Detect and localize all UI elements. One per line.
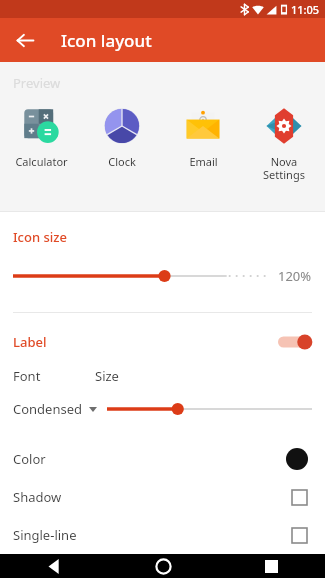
staticText: Shadow [13,488,62,506]
button[interactable]: Color [0,440,325,478]
staticText: 11:05 [291,2,320,17]
button[interactable]: Icon size slider [13,262,272,290]
staticText: Label [13,333,47,351]
button[interactable]: Label toggle [274,330,314,354]
staticText: Calculator [15,154,68,169]
button[interactable]: Back [0,554,109,578]
staticText: Icon size [13,228,67,246]
button[interactable]: Back [8,23,42,57]
staticText: Font [13,367,95,385]
button[interactable]: Recent apps [217,554,325,578]
staticText: Single-line [13,526,77,544]
button[interactable]: Calculator [5,104,77,169]
button[interactable]: Label size slider [107,396,312,422]
button[interactable]: Home [109,554,217,578]
staticText: Preview [13,74,61,92]
button[interactable]: Clock [86,104,158,169]
button[interactable]: Nova Settings [248,104,320,182]
staticText: 120% [278,267,312,285]
staticText: Condensed [13,400,83,418]
staticText: Icon layout [61,29,152,52]
staticText: Size [95,367,119,385]
button[interactable]: Email [167,104,239,169]
button[interactable]: Single-line [0,516,325,554]
button[interactable]: Condensed [13,396,97,422]
button[interactable]: Shadow [0,478,325,516]
staticText: Email [189,154,218,169]
button[interactable]: Label [0,327,325,357]
staticText: Color [13,450,46,468]
staticText: Nova Settings [263,154,305,182]
staticText: Clock [108,154,136,169]
